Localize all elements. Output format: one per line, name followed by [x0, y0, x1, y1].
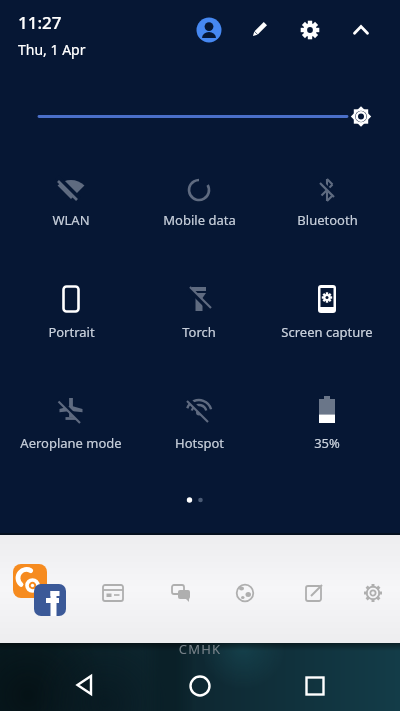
staticText: 35%	[314, 434, 340, 452]
staticText: Hotspot	[175, 434, 224, 452]
button[interactable]: Torch	[133, 277, 265, 344]
staticText: 11:27	[18, 11, 62, 34]
button[interactable]: Bluetooth	[261, 168, 393, 232]
staticText: Screen capture	[281, 323, 373, 341]
staticText: Aeroplane mode	[20, 434, 122, 452]
button[interactable]	[13, 564, 47, 598]
staticText: CMHK	[0, 640, 400, 658]
button[interactable]: 35%	[261, 388, 393, 455]
staticText: Bluetooth	[297, 211, 358, 229]
button[interactable]	[358, 578, 388, 608]
button[interactable]: Mobile data	[133, 168, 265, 232]
staticText: Portrait	[48, 323, 95, 341]
button[interactable]	[299, 578, 329, 608]
button[interactable]: WLAN	[5, 168, 137, 232]
button[interactable]: Aeroplane mode	[5, 388, 137, 455]
staticText: WLAN	[52, 211, 90, 229]
button[interactable]	[166, 578, 196, 608]
button[interactable]	[345, 14, 377, 46]
staticText: Mobile data	[163, 211, 236, 229]
button[interactable]	[180, 666, 220, 706]
staticText: Thu, 1 Apr	[18, 40, 86, 59]
button[interactable]: Hotspot	[133, 388, 265, 455]
button[interactable]	[193, 14, 225, 46]
staticText: Torch	[182, 323, 216, 341]
button[interactable]	[98, 578, 128, 608]
button[interactable]	[230, 578, 260, 608]
button[interactable]	[295, 666, 335, 706]
button[interactable]: Screen capture	[261, 277, 393, 344]
button[interactable]	[243, 14, 275, 46]
button[interactable]: Portrait	[5, 277, 137, 344]
button[interactable]	[34, 584, 66, 616]
button[interactable]	[66, 665, 106, 705]
button[interactable]	[294, 14, 326, 46]
